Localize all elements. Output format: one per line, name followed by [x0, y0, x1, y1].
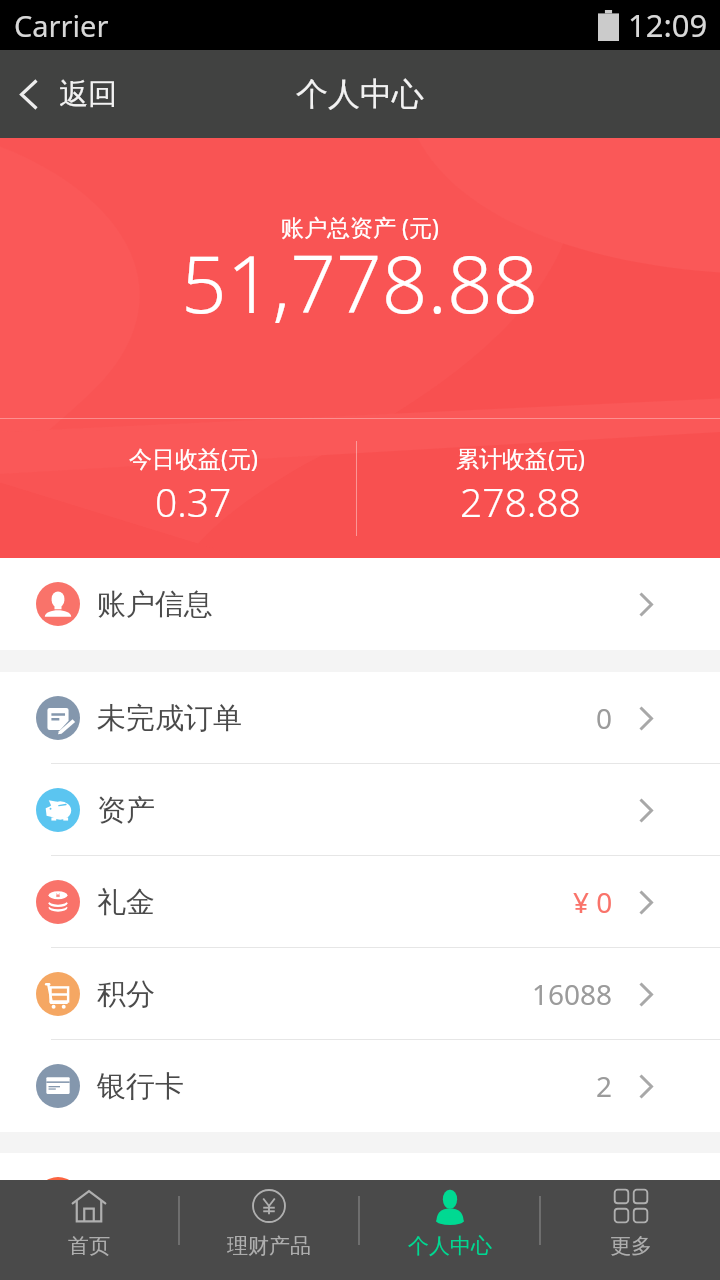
staticText: 个人中心	[296, 74, 424, 114]
button[interactable]: 首页	[0, 1180, 178, 1280]
staticText: 首页	[68, 1233, 110, 1259]
staticText: 51,778.88	[181, 227, 539, 336]
button[interactable]: 礼金	[0, 856, 720, 948]
staticText: 16088	[532, 975, 613, 1013]
staticText: Carrier	[14, 6, 109, 45]
staticText: 账户信息	[97, 586, 213, 623]
button[interactable]: 积分	[0, 948, 720, 1040]
staticText: 礼金	[97, 884, 155, 921]
button[interactable]: 优惠券	[0, 1153, 720, 1180]
button[interactable]: 银行卡	[0, 1040, 720, 1132]
button[interactable]: 理财产品	[180, 1180, 358, 1280]
staticText: 返回	[59, 76, 117, 113]
staticText: 账户总资产 (元)	[281, 211, 439, 242]
staticText: 未完成订单	[97, 700, 242, 737]
staticText: 0	[596, 699, 613, 737]
staticText: ¥ 0	[573, 883, 613, 921]
staticText: 银行卡	[97, 1068, 184, 1105]
button[interactable]: 返回	[0, 50, 133, 138]
staticText: 累计收益(元)	[456, 442, 585, 473]
staticText: 今日收益(元)	[129, 442, 258, 473]
button[interactable]: 账户信息	[0, 558, 720, 650]
button[interactable]: 资产	[0, 764, 720, 856]
button[interactable]: 个人中心	[360, 1180, 539, 1280]
staticText: 积分	[97, 976, 155, 1013]
staticText: 资产	[97, 792, 155, 829]
staticText: 278.88	[460, 475, 581, 528]
button[interactable]: 更多	[541, 1180, 720, 1280]
button[interactable]: 未完成订单	[0, 672, 720, 764]
staticText: 2	[596, 1067, 613, 1105]
staticText: 12:09	[628, 4, 708, 46]
staticText: 更多	[610, 1233, 652, 1259]
staticText: 0.37	[155, 475, 232, 528]
staticText: 个人中心	[408, 1233, 492, 1259]
staticText: 理财产品	[227, 1233, 311, 1259]
